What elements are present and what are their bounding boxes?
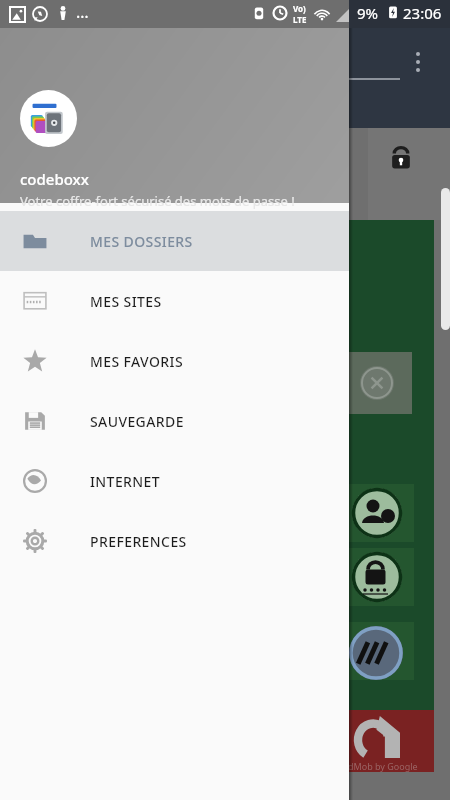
- button[interactable]: MES DOSSIERS: [0, 211, 349, 271]
- button[interactable]: INTERNET: [0, 451, 349, 511]
- staticText: dMob by Google: [348, 760, 418, 772]
- staticText: MES FAVORIS: [90, 352, 184, 371]
- staticText: codeboxx: [20, 169, 89, 189]
- staticText: 23:06: [403, 3, 442, 23]
- staticText: Votre coffre-fort sécurisé des mots de p…: [20, 192, 295, 210]
- staticText: MES DOSSIERS: [90, 232, 193, 251]
- staticText: LTE: [293, 14, 307, 25]
- staticText: Vo): [293, 3, 306, 14]
- staticText: INTERNET: [90, 472, 161, 491]
- staticText: MES SITES: [90, 292, 162, 311]
- button[interactable]: More options: [416, 52, 420, 76]
- staticText: PREFERENCES: [90, 532, 187, 551]
- staticText: 9%: [357, 3, 379, 23]
- button[interactable]: PREFERENCES: [0, 511, 349, 571]
- button[interactable]: SAUVEGARDE: [0, 391, 349, 451]
- button[interactable]: MES FAVORIS: [0, 331, 349, 391]
- button[interactable]: MES SITES: [0, 271, 349, 331]
- staticText: SAUVEGARDE: [90, 412, 184, 431]
- staticText: …: [76, 1, 89, 23]
